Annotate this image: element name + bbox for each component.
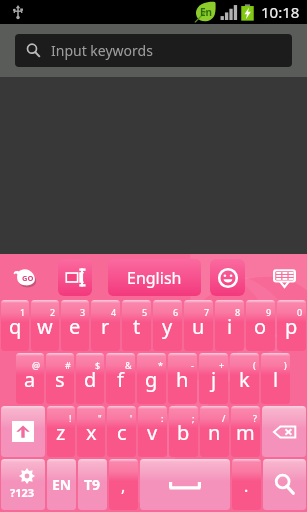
button[interactable]: Search <box>263 459 306 510</box>
staticText: k <box>239 366 250 393</box>
button[interactable]: 4 <box>91 300 120 351</box>
button[interactable]: ' <box>107 406 136 457</box>
staticText: 9 <box>266 306 272 318</box>
staticText: ( <box>253 359 256 371</box>
button[interactable]: ? <box>231 406 260 457</box>
button[interactable]: @ <box>16 353 44 404</box>
button[interactable]: ! <box>47 406 75 457</box>
staticText: ! <box>69 412 72 424</box>
staticText: x <box>86 419 97 446</box>
staticText: 6 <box>173 306 179 318</box>
staticText: 4 <box>111 306 117 318</box>
staticText: ) <box>284 359 287 371</box>
staticText: m <box>236 419 255 446</box>
button[interactable]: Symbols and settings <box>1 459 45 510</box>
staticText: ' <box>130 412 133 424</box>
staticText: l <box>273 366 279 393</box>
staticText: , <box>121 475 126 497</box>
button[interactable]: Shift <box>1 406 45 457</box>
button[interactable]: Resize keyboard <box>58 259 92 296</box>
button[interactable]: * <box>137 353 166 404</box>
button[interactable]: Input keywords <box>15 34 292 67</box>
staticText: Input keywords <box>51 41 153 60</box>
button[interactable]: . <box>232 459 261 510</box>
button[interactable]: English <box>108 259 201 296</box>
staticText: / <box>222 412 226 424</box>
button[interactable]: # <box>46 353 74 404</box>
button[interactable]: ( <box>230 353 259 404</box>
staticText: " <box>98 412 102 424</box>
staticText: & <box>125 359 132 371</box>
staticText: . <box>244 475 249 497</box>
button[interactable]: T9 <box>78 459 107 510</box>
button[interactable]: 2 <box>31 300 59 351</box>
staticText: English <box>127 267 182 289</box>
staticText: : <box>161 412 164 424</box>
staticText: p <box>285 313 298 340</box>
button[interactable]: 8 <box>215 300 244 351</box>
button[interactable]: Hide keyboard <box>266 259 302 296</box>
staticText: # <box>65 359 71 371</box>
staticText: c <box>117 419 127 446</box>
staticText: u <box>192 313 205 340</box>
staticText: t <box>133 313 141 340</box>
staticText: 1 <box>20 306 26 318</box>
button[interactable]: ; <box>169 406 198 457</box>
staticText: ?123 <box>10 485 35 500</box>
button[interactable]: ) <box>261 353 290 404</box>
staticText: 5 <box>142 306 148 318</box>
button[interactable]: 6 <box>153 300 182 351</box>
staticText: i <box>227 313 233 340</box>
button[interactable]: 3 <box>61 300 89 351</box>
button[interactable]: , <box>109 459 138 510</box>
button[interactable]: / <box>200 406 229 457</box>
button[interactable]: $ <box>76 353 104 404</box>
button[interactable]: 0 <box>277 300 306 351</box>
staticText: r <box>101 313 110 340</box>
staticText: + <box>219 359 225 371</box>
staticText: y <box>162 313 173 340</box>
button[interactable]: " <box>77 406 105 457</box>
staticText: f <box>117 366 124 393</box>
staticText: 10:18 <box>261 2 300 22</box>
staticText: GO <box>22 273 34 283</box>
staticText: z <box>56 419 66 446</box>
staticText: T9 <box>84 475 101 494</box>
staticText: n <box>208 419 221 446</box>
button[interactable]: Backspace <box>262 406 306 457</box>
staticText: d <box>84 366 97 393</box>
staticText: En <box>200 5 213 19</box>
staticText: v <box>147 419 158 446</box>
button[interactable]: - <box>168 353 197 404</box>
staticText: h <box>176 366 189 393</box>
button[interactable]: + <box>199 353 228 404</box>
staticText: 8 <box>235 306 241 318</box>
staticText: j <box>211 366 217 393</box>
button[interactable]: : <box>138 406 167 457</box>
staticText: @ <box>32 359 41 371</box>
button[interactable]: EN <box>47 459 76 510</box>
button[interactable]: Emoji <box>210 259 245 296</box>
staticText: e <box>69 313 81 340</box>
staticText: - <box>191 359 194 371</box>
button[interactable]: & <box>106 353 135 404</box>
staticText: 3 <box>80 306 86 318</box>
staticText: g <box>145 366 158 393</box>
staticText: s <box>55 366 65 393</box>
staticText: a <box>24 366 36 393</box>
staticText: 2 <box>50 306 56 318</box>
button[interactable]: Space <box>140 459 230 510</box>
button[interactable]: 7 <box>184 300 213 351</box>
staticText: 7 <box>204 306 210 318</box>
staticText: b <box>177 419 190 446</box>
staticText: ; <box>192 412 195 424</box>
staticText: o <box>254 313 267 340</box>
staticText: ? <box>253 412 257 424</box>
button[interactable]: 1 <box>1 300 29 351</box>
staticText: 0 <box>297 306 303 318</box>
staticText: * <box>158 359 163 371</box>
button[interactable]: 5 <box>122 300 151 351</box>
button[interactable]: GO Keyboard <box>14 268 38 286</box>
button[interactable]: 9 <box>246 300 275 351</box>
staticText: q <box>9 313 22 340</box>
